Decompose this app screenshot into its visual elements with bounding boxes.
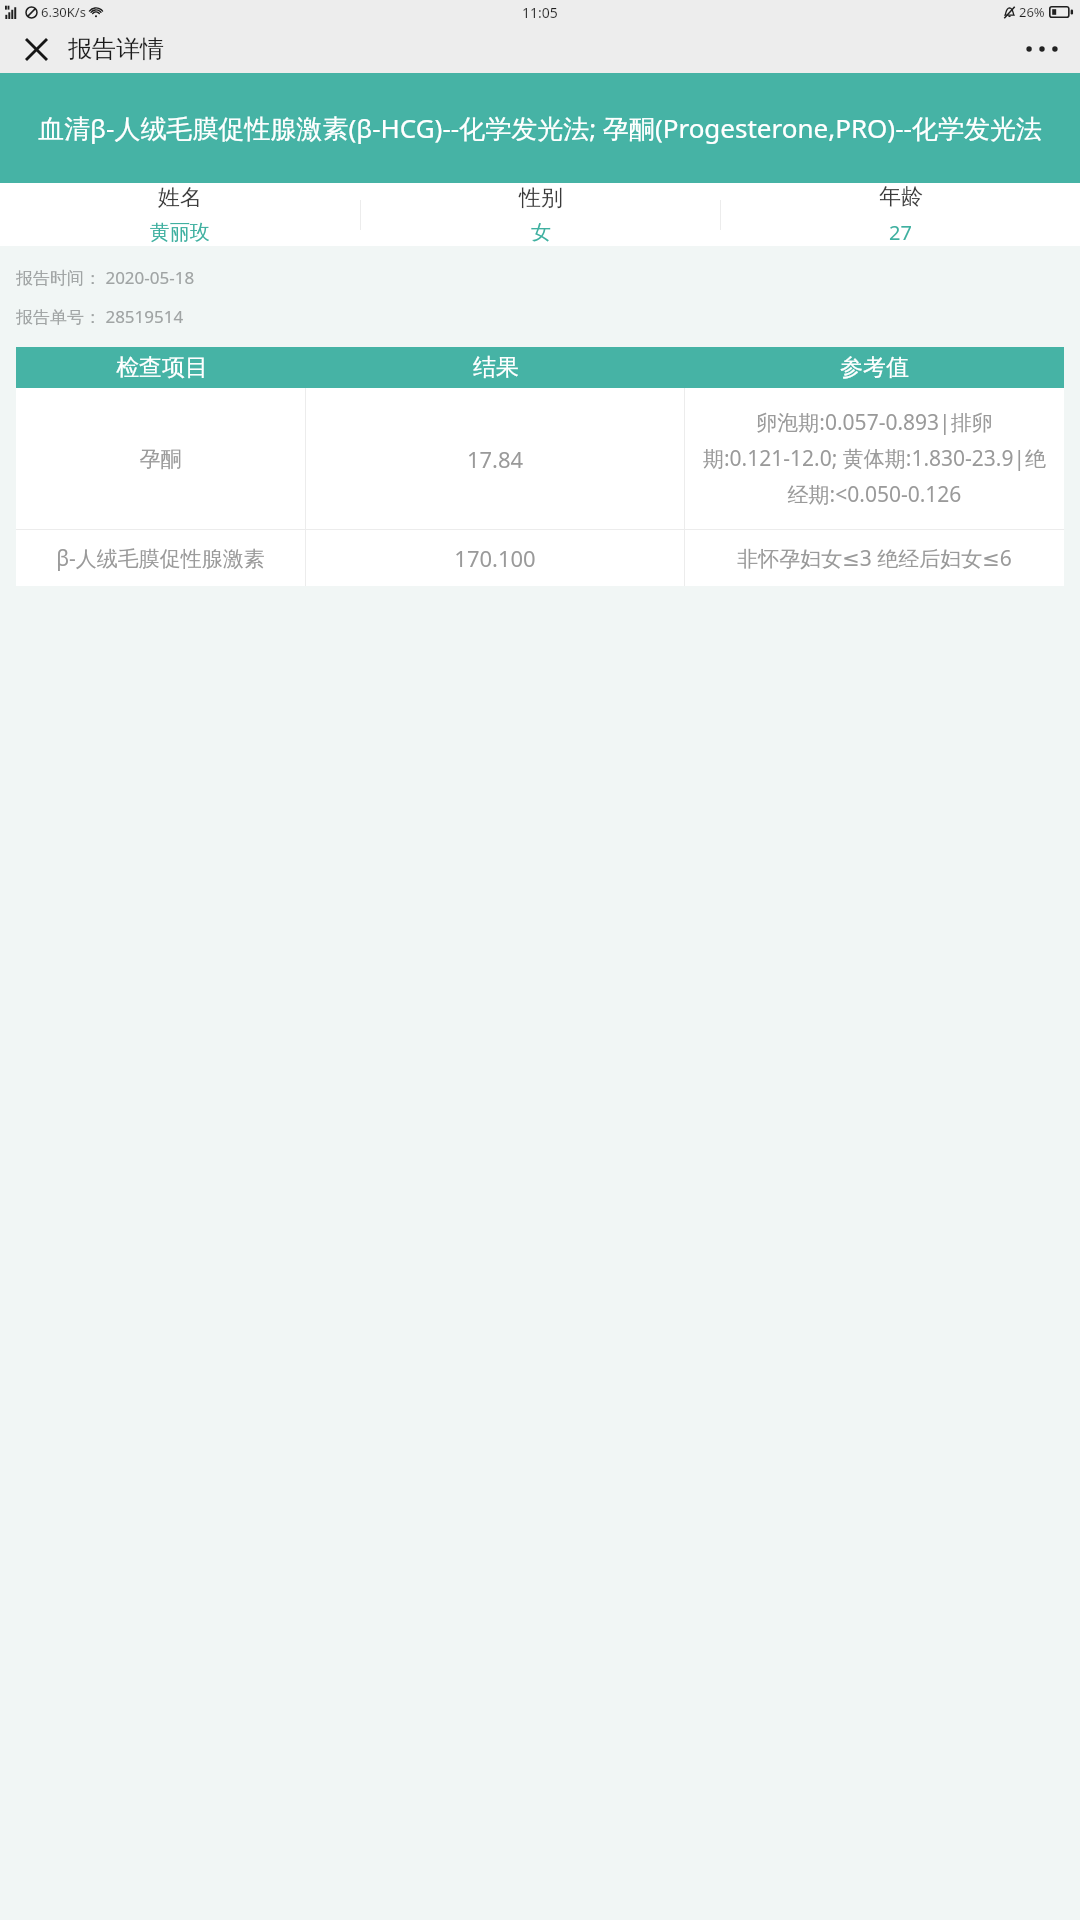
staticText: 黄丽玫 — [150, 220, 210, 245]
button[interactable]: β-人绒毛膜促性腺激素 — [16, 530, 1064, 586]
button[interactable]: 性别 — [361, 184, 720, 245]
staticText: β-人绒毛膜促性腺激素 — [24, 544, 297, 573]
staticText: 参考值 — [840, 353, 909, 382]
staticText: 姓名 — [158, 184, 202, 212]
button[interactable]: 孕酮 — [16, 388, 1064, 529]
staticText: 报告详情 — [68, 34, 164, 64]
staticText: 检查项目 — [116, 353, 208, 382]
staticText: 报告单号： 28519514 — [16, 305, 184, 328]
staticText: 女 — [531, 220, 551, 245]
staticText: 年龄 — [879, 183, 923, 211]
staticText: 血清β-人绒毛膜促性腺激素(β-HCG)--化学发光法; 孕酮(Progeste… — [11, 110, 1069, 146]
staticText: 26% — [1019, 3, 1045, 21]
button[interactable]: 姓名 — [0, 184, 360, 245]
staticText: 孕酮 — [24, 446, 297, 472]
staticText: 17.84 — [312, 444, 678, 474]
staticText: 170.100 — [312, 543, 678, 573]
button[interactable]: More options — [1018, 25, 1066, 73]
staticText: 27 — [889, 219, 912, 246]
staticText: 6.30K/s — [41, 3, 86, 21]
staticText: 非怀孕妇女≤3 绝经后妇女≤6 — [695, 544, 1054, 573]
staticText: 性别 — [519, 184, 563, 212]
button[interactable]: 年龄 — [721, 183, 1080, 246]
staticText: 报告时间： 2020-05-18 — [16, 266, 195, 289]
staticText: 卵泡期:0.057-0.893|排卵期:0.121-12.0; 黄体期:1.83… — [695, 408, 1054, 509]
staticText: 11:05 — [522, 3, 558, 22]
staticText: 结果 — [473, 353, 519, 382]
button[interactable]: Close — [14, 27, 58, 71]
